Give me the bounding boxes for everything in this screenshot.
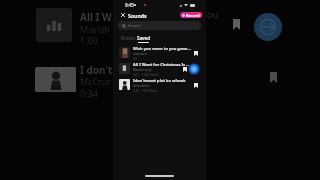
staticText: 0:34 <box>80 87 98 99</box>
staticText: Browse <box>121 35 135 41</box>
button[interactable]: Browse <box>121 32 135 44</box>
button[interactable]: Idon'tnsaet plot be wlmak <box>113 78 206 94</box>
staticText: 0:6 <box>133 57 138 61</box>
button[interactable]: Saved <box>137 32 150 44</box>
staticText: All I W <box>80 10 112 24</box>
button[interactable]: Save <box>181 65 189 73</box>
staticText: Mariah <box>80 23 110 35</box>
staticText: MariahCarey <box>133 68 152 72</box>
button[interactable]: Search <box>118 21 201 30</box>
staticText: All I Want for Christmas Is You <box>133 62 191 67</box>
staticText: 4:01 · 1.2M Shares <box>133 73 159 77</box>
staticText: Search <box>128 23 141 28</box>
staticText: Idon'tnsaet plot be wlmak <box>133 78 186 83</box>
staticText: Saved <box>137 35 150 41</box>
button[interactable]: Wish you more to you gone go like th... <box>113 46 206 62</box>
staticText: unknown <box>133 52 147 56</box>
staticText: Record <box>186 13 200 18</box>
staticText: drGuraHart <box>133 84 150 88</box>
staticText: Wish you more to you gone go like th... <box>133 46 191 51</box>
button[interactable]: Save <box>192 81 200 89</box>
staticText: Sounds <box>128 12 147 19</box>
staticText: 0:34 · 1993 Beatz <box>133 89 157 93</box>
button[interactable]: Record <box>180 12 202 18</box>
staticText: Mr.Crur <box>80 75 112 87</box>
staticText: 1:00 <box>80 34 98 46</box>
button[interactable]: Close <box>119 11 127 19</box>
button[interactable]: All I Want for Christmas Is You <box>113 62 206 78</box>
staticText: 9:45 <box>125 2 134 8</box>
staticText: ou <box>207 8 219 20</box>
button[interactable]: Save <box>192 49 200 57</box>
staticText: I don't <box>80 63 113 77</box>
